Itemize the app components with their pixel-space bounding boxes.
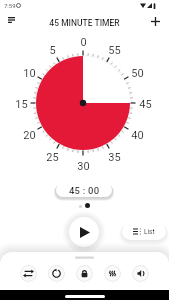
staticText: 30: [77, 160, 90, 173]
staticText: List: [144, 228, 155, 236]
staticText: 50: [131, 67, 144, 80]
staticText: 25: [46, 151, 59, 164]
staticText: 35: [108, 151, 121, 164]
staticText: 15: [15, 98, 28, 111]
button[interactable]: Swap: [20, 265, 37, 282]
staticText: 10: [23, 67, 36, 80]
button[interactable]: Play: [69, 217, 99, 247]
staticText: 40: [131, 129, 144, 142]
button[interactable]: Menu: [2, 11, 20, 29]
staticText: 0: [80, 36, 87, 49]
button[interactable]: List: [122, 223, 166, 240]
staticText: 45 MINUTE TIMER: [0, 18, 169, 28]
button[interactable]: 45 : 00: [56, 183, 112, 197]
button[interactable]: Volume: [132, 265, 149, 282]
staticText: 5: [49, 44, 56, 57]
staticText: 55: [108, 44, 121, 57]
button[interactable]: Lock: [76, 265, 93, 282]
button[interactable]: Add: [146, 12, 164, 30]
staticText: 7:59: [4, 2, 16, 9]
button[interactable]: Reset: [48, 265, 65, 282]
button[interactable]: Vibrate: [104, 265, 121, 282]
staticText: 45: [139, 98, 152, 111]
staticText: 45 : 00: [69, 185, 100, 196]
staticText: 20: [23, 129, 36, 142]
